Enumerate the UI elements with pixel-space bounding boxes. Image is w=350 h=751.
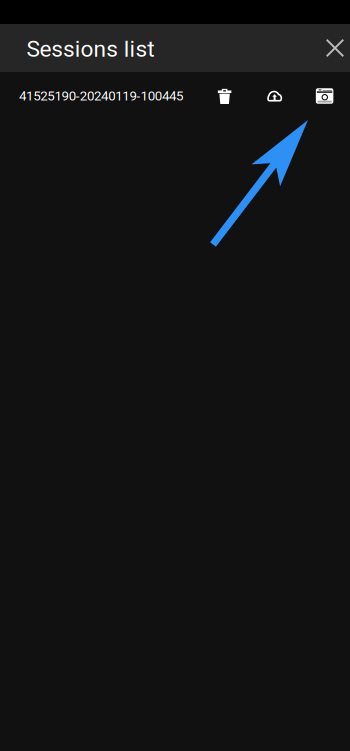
- button[interactable]: Delete session: [200, 72, 250, 120]
- staticText: Sessions list: [27, 36, 154, 62]
- button[interactable]: Close: [320, 24, 350, 72]
- staticText: 41525190-20240119-100445: [19, 88, 183, 104]
- button[interactable]: Upload session: [250, 72, 300, 120]
- button[interactable]: Session snapshot: [300, 72, 350, 120]
